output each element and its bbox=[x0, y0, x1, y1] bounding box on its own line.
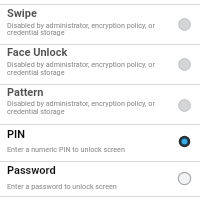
staticText: Disabled by administrator, encryption po… bbox=[7, 21, 155, 29]
staticText: Disabled by administrator, encryption po… bbox=[7, 99, 155, 107]
staticText: Disabled by administrator, encryption po… bbox=[7, 60, 155, 68]
staticText: credential storage bbox=[7, 68, 65, 76]
staticText: Enter a numeric PIN to unlock screen bbox=[7, 145, 125, 153]
button[interactable]: Face Unlock bbox=[0, 45, 200, 84]
staticText: Pattern bbox=[7, 86, 44, 99]
button[interactable]: Pattern bbox=[0, 85, 200, 124]
staticText: Swipe bbox=[7, 7, 37, 20]
staticText: Password bbox=[7, 164, 56, 177]
button[interactable]: PIN bbox=[0, 125, 200, 161]
staticText: PIN bbox=[7, 128, 26, 141]
button[interactable]: Password bbox=[0, 162, 200, 196]
staticText: Face Unlock bbox=[7, 46, 68, 59]
staticText: Enter a password to unlock screen bbox=[7, 182, 117, 190]
staticText: credential storage bbox=[7, 28, 65, 36]
button[interactable]: Swipe bbox=[0, 5, 200, 44]
staticText: credential storage bbox=[7, 107, 65, 115]
